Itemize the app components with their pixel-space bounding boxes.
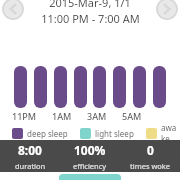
staticText: awake xyxy=(161,122,180,144)
button[interactable]: 8:00 xyxy=(0,142,60,171)
staticText: 100% xyxy=(74,142,106,158)
button[interactable]: More details xyxy=(59,174,121,180)
staticText: 8:00 xyxy=(18,142,42,158)
staticText: times woke xyxy=(130,161,171,171)
staticText: 0 xyxy=(147,142,154,158)
staticText: 1AM xyxy=(52,110,72,122)
staticText: deep sleep xyxy=(27,128,68,139)
staticText: light sleep xyxy=(95,128,134,139)
button[interactable]: light sleep xyxy=(80,128,134,139)
staticText: 5AM xyxy=(122,110,142,122)
staticText: 11:00 PM - 7:00 AM xyxy=(41,11,140,26)
button[interactable]: Next night xyxy=(156,0,178,20)
staticText: efficiency xyxy=(73,161,107,171)
button[interactable]: Previous night xyxy=(2,0,24,20)
button[interactable]: awake xyxy=(146,122,180,144)
staticText: 3AM xyxy=(87,110,107,122)
button[interactable]: 0 xyxy=(120,142,180,171)
staticText: duration xyxy=(15,161,46,171)
staticText: 2015-Mar-9, 1/1 xyxy=(49,0,131,10)
button[interactable]: 100% xyxy=(60,142,120,171)
staticText: 11PM xyxy=(12,110,37,122)
button[interactable]: deep sleep xyxy=(12,128,68,139)
